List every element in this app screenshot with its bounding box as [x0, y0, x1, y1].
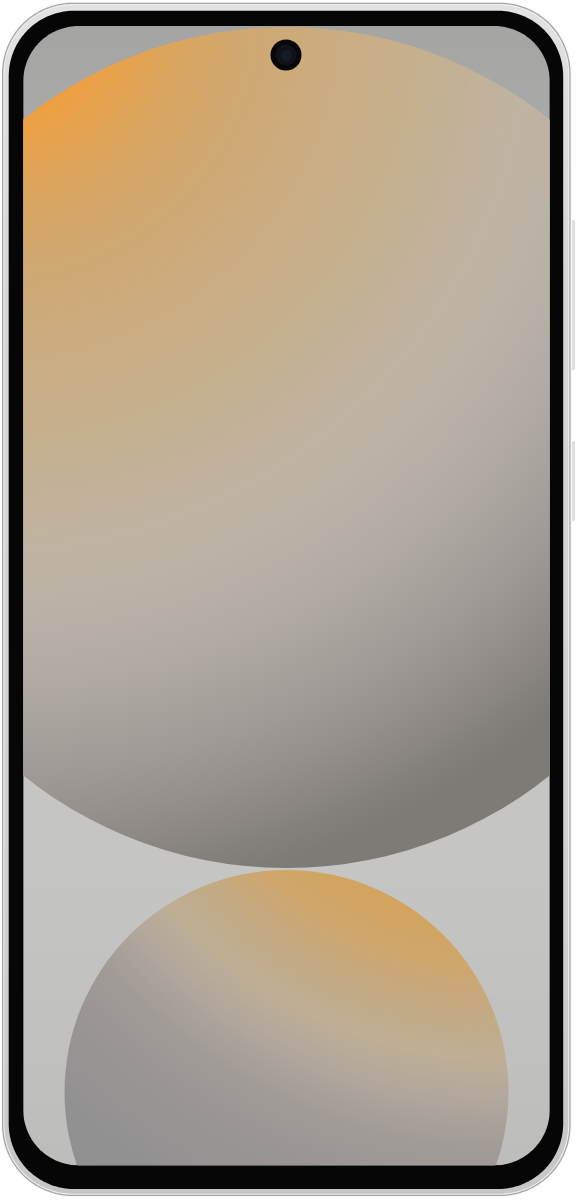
button[interactable]: Phone device product render: [0, 0, 578, 1200]
